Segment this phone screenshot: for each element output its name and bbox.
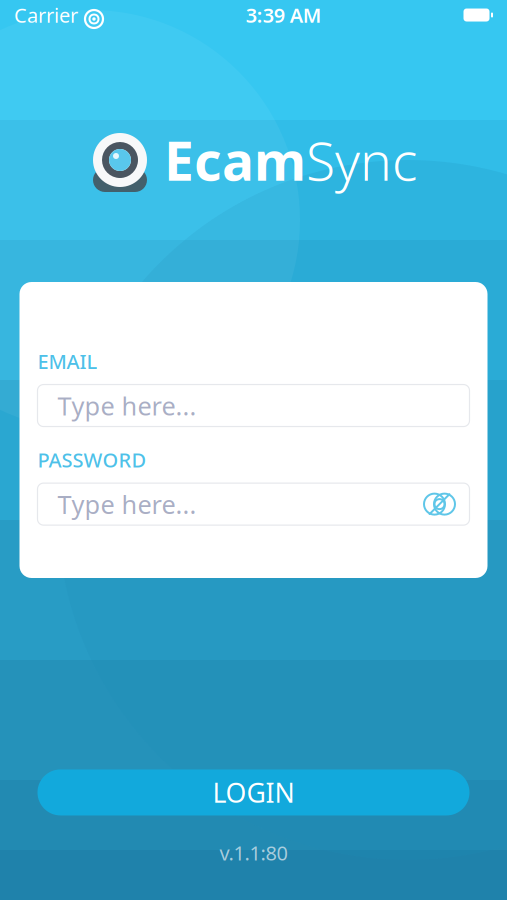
staticText: PASSWORD bbox=[37, 447, 146, 473]
staticText: Ecam bbox=[164, 125, 306, 195]
staticText: Type here... bbox=[57, 389, 196, 422]
staticText: Carrier bbox=[14, 2, 78, 28]
staticText: Type here... bbox=[57, 487, 196, 521]
staticText: Sync bbox=[306, 125, 417, 195]
staticText: 3:39 AM bbox=[246, 2, 322, 28]
button[interactable]: Show password bbox=[419, 484, 459, 524]
staticText: LOGIN bbox=[212, 775, 294, 810]
button[interactable]: LOGIN bbox=[37, 769, 469, 815]
staticText: EMAIL bbox=[37, 348, 97, 375]
staticText: v.1.1:80 bbox=[219, 839, 287, 866]
